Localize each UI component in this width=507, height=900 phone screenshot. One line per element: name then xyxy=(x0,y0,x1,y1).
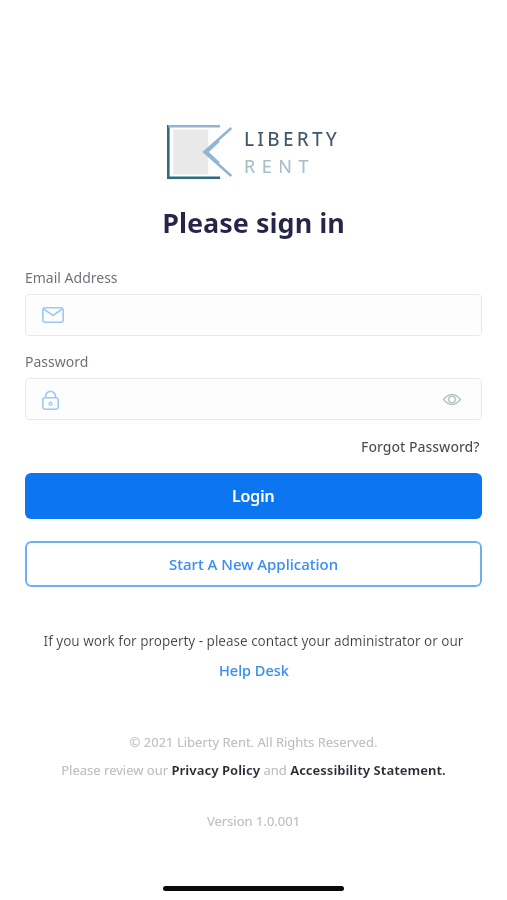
button[interactable]: Show password xyxy=(439,386,465,412)
staticText: If you work for property - please contac… xyxy=(18,632,489,650)
staticText: Email Address xyxy=(25,268,118,287)
button[interactable] xyxy=(25,294,482,336)
staticText: Start A New Application xyxy=(169,554,339,574)
staticText: Please review our Privacy Policy and Acc… xyxy=(14,761,493,779)
button[interactable]: Start A New Application xyxy=(25,541,482,587)
button[interactable]: Forgot Password? xyxy=(359,434,482,459)
staticText: Forgot Password? xyxy=(361,437,480,456)
staticText: Login xyxy=(232,485,275,507)
staticText: Password xyxy=(25,352,89,371)
staticText: Help Desk xyxy=(219,660,289,680)
button[interactable]: Help Desk xyxy=(215,658,293,682)
button[interactable]: Login xyxy=(25,473,482,519)
staticText: © 2021 Liberty Rent. All Rights Reserved… xyxy=(0,733,507,751)
staticText: RENT xyxy=(244,154,315,179)
staticText: Please sign in xyxy=(162,204,345,241)
staticText: Version 1.0.001 xyxy=(0,812,507,830)
staticText: LIBERTY xyxy=(244,126,341,152)
button[interactable]: Show password xyxy=(25,378,482,420)
